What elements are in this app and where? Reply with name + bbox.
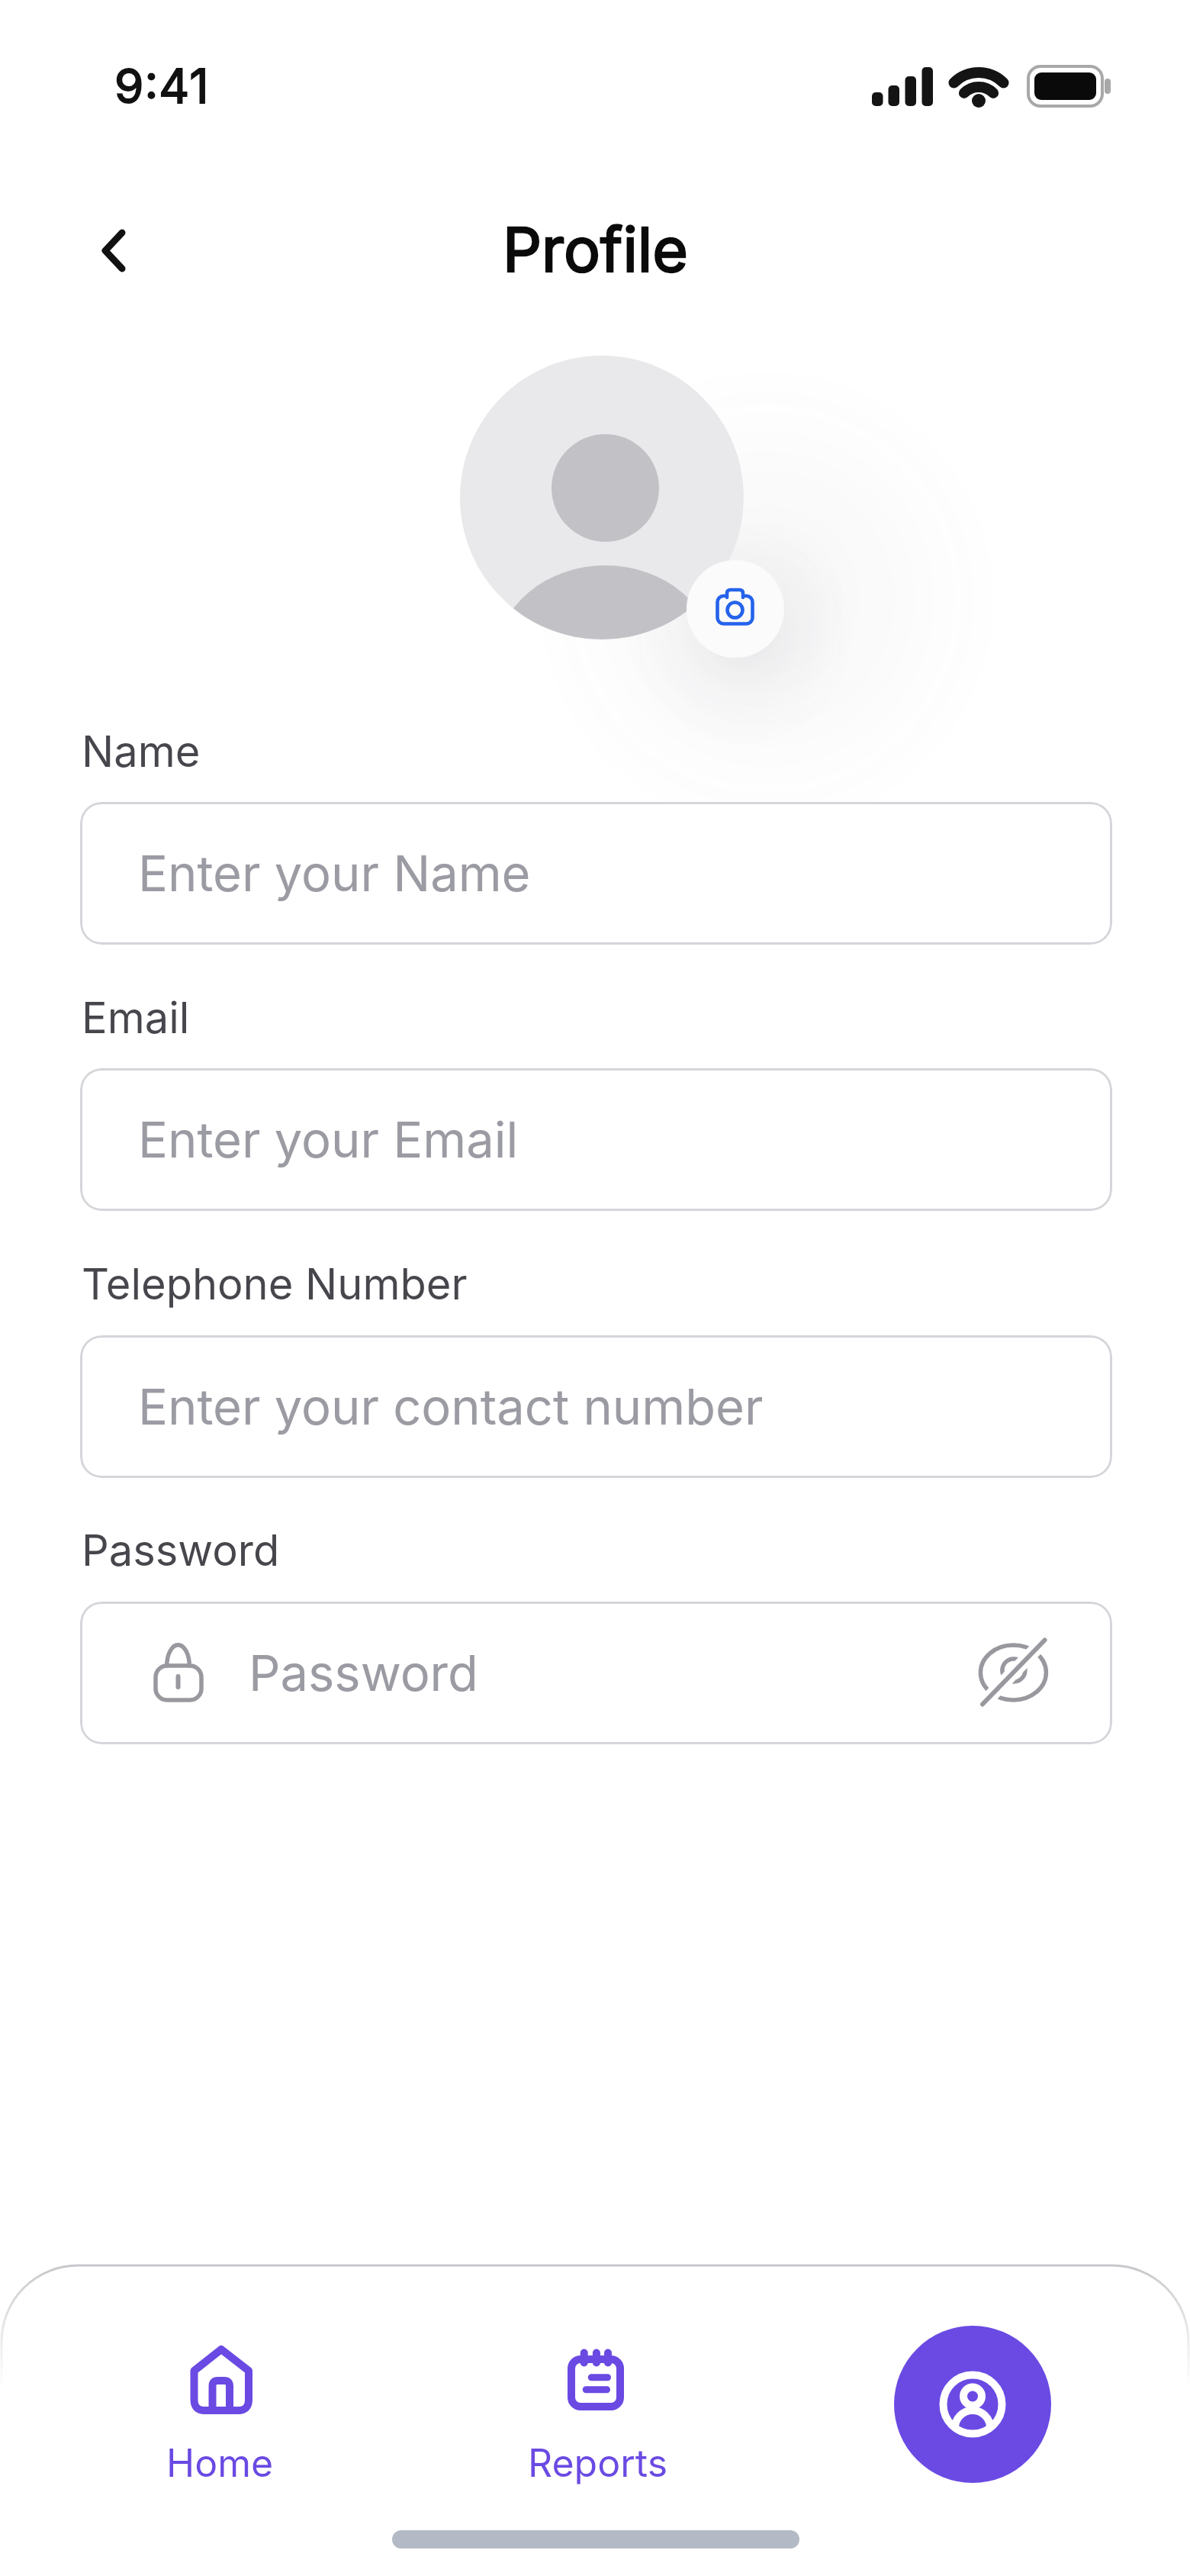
button[interactable]: Reports [519,2329,677,2481]
staticText: Profile [503,212,688,286]
staticText: 9:41 [114,57,210,114]
staticText: Enter your Email [138,1109,519,1170]
staticText: Enter your contact number [138,1377,764,1437]
staticText: Email [82,992,190,1044]
button[interactable]: Enter your contact number [80,1335,1112,1478]
staticText: Telephone Number [82,1258,468,1310]
button[interactable] [72,220,156,290]
button[interactable]: Password [80,1602,1112,1744]
staticText: Reports [528,2440,668,2486]
staticText: Name [82,726,201,778]
button[interactable]: Enter your Name [80,802,1112,945]
staticText: Enter your Name [138,843,531,903]
staticText: Password [249,1643,478,1703]
staticText: Password [82,1525,280,1576]
button[interactable] [894,2326,1051,2483]
staticText: Home [166,2440,274,2486]
button[interactable] [687,560,784,658]
button[interactable]: Home [143,2329,296,2481]
button[interactable]: Enter your Email [80,1068,1112,1211]
